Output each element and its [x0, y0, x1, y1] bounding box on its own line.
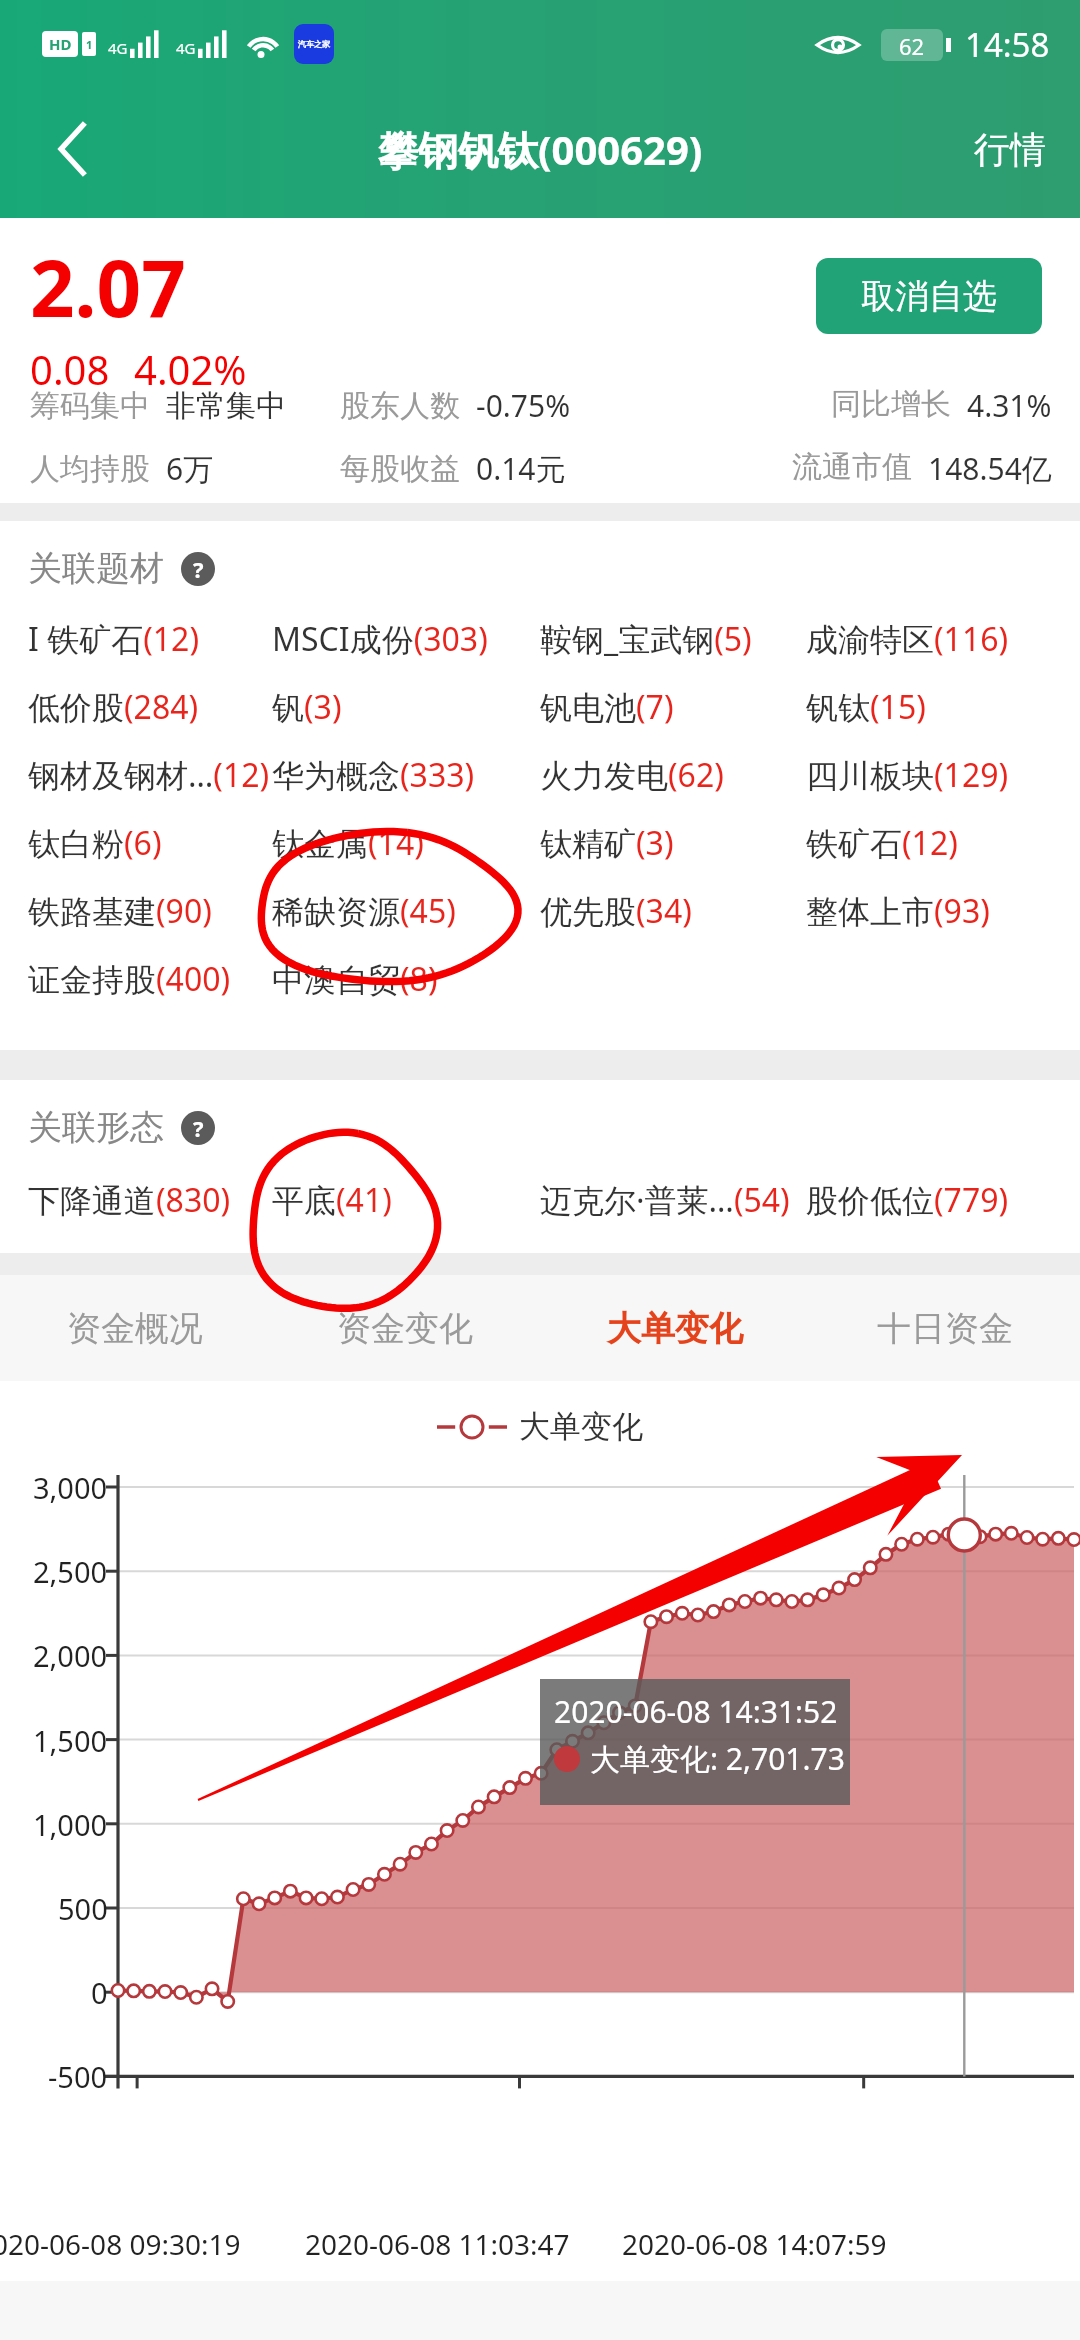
button[interactable]: 下降通道(830) — [28, 1178, 231, 1222]
button[interactable]: Help — [180, 1110, 216, 1146]
button[interactable]: 四川板块(129) — [806, 753, 1009, 797]
button[interactable]: 钒(3) — [272, 685, 342, 729]
button[interactable]: 稀缺资源(45) — [272, 889, 456, 933]
staticText: 股价低位(779) — [806, 1178, 1009, 1222]
staticText: 1,500 — [33, 1721, 108, 1760]
button[interactable]: 华为概念(333) — [272, 753, 475, 797]
button[interactable]: 钒电池(7) — [540, 685, 674, 729]
staticText: 平底(41) — [272, 1178, 392, 1222]
staticText: 大单变化 — [519, 1407, 643, 1446]
button[interactable]: 钛白粉(6) — [28, 821, 162, 865]
staticText: 铁矿石(12) — [806, 821, 958, 865]
staticText: 同比增长 — [831, 385, 951, 423]
staticText: 迈克尔·普莱…(54) — [540, 1178, 790, 1222]
staticText: 1 — [86, 37, 93, 52]
staticText: 0 — [91, 1973, 108, 2012]
staticText: 四川板块(129) — [806, 753, 1009, 797]
staticText: 资金概况 — [67, 1307, 203, 1350]
staticText: 取消自选 — [861, 275, 997, 318]
staticText: 整体上市(93) — [806, 889, 990, 933]
staticText: 14:58 — [965, 22, 1050, 67]
button[interactable]: 大单变化 — [540, 1275, 810, 1381]
staticText: 稀缺资源(45) — [272, 889, 456, 933]
staticText: ? — [193, 554, 204, 584]
staticText: 火力发电(62) — [540, 753, 724, 797]
staticText: MSCI成份(303) — [272, 617, 488, 661]
staticText: 筹码集中 — [30, 387, 150, 425]
staticText: 2020-06-08 11:03:47 — [305, 2225, 570, 2263]
button[interactable]: 铁矿石(12) — [806, 821, 958, 865]
staticText: 148.54亿 — [928, 448, 1052, 489]
button[interactable]: 优先股(34) — [540, 889, 692, 933]
staticText: 2,000 — [33, 1636, 108, 1675]
staticText: 钛金属(14) — [272, 821, 424, 865]
staticText: 下降通道(830) — [28, 1178, 231, 1222]
staticText: 关联形态 — [28, 1106, 164, 1149]
staticText: 人均持股 — [30, 450, 150, 488]
staticText: 1,000 — [33, 1805, 108, 1844]
staticText: 3,000 — [33, 1468, 108, 1507]
staticText: I 铁矿石(12) — [28, 617, 199, 661]
button[interactable]: 成渝特区(116) — [806, 617, 1009, 661]
staticText: 62 — [899, 31, 925, 59]
staticText: 2020-06-08 14:31:52 — [554, 1691, 838, 1732]
button[interactable]: 平底(41) — [272, 1178, 392, 1222]
staticText: 股东人数 — [340, 387, 460, 425]
staticText: 大单变化: 2,701.73 — [590, 1738, 845, 1779]
button[interactable]: Help — [180, 551, 216, 587]
button[interactable]: 十日资金 — [810, 1275, 1080, 1381]
staticText: 钒电池(7) — [540, 685, 674, 729]
button[interactable]: 低价股(284) — [28, 685, 199, 729]
staticText: 关联题材 — [28, 547, 164, 590]
staticText: 大单变化 — [607, 1307, 743, 1350]
staticText: 钢材及钢材…(12) — [28, 753, 270, 797]
staticText: 6万 — [166, 448, 214, 489]
staticText: 2.07 — [30, 234, 186, 340]
button[interactable]: 证金持股(400) — [28, 957, 231, 1001]
staticText: 钛精矿(3) — [540, 821, 674, 865]
staticText: 非常集中 — [166, 387, 286, 425]
staticText: 成渝特区(116) — [806, 617, 1009, 661]
button[interactable]: 取消自选 — [816, 258, 1042, 334]
button[interactable]: 钛精矿(3) — [540, 821, 674, 865]
staticText: 0.14元 — [476, 448, 566, 489]
staticText: 行情 — [974, 127, 1046, 172]
button[interactable]: 资金概况 — [0, 1275, 270, 1381]
staticText: 攀钢钒钛(000629) — [378, 122, 703, 177]
staticText: -0.75% — [476, 385, 571, 426]
button[interactable]: 火力发电(62) — [540, 753, 724, 797]
staticText: 2020-06-08 14:07:59 — [622, 2225, 887, 2263]
button[interactable]: Back — [36, 111, 112, 187]
staticText: 中澳自贸(8) — [272, 957, 438, 1001]
button[interactable]: I 铁矿石(12) — [28, 617, 199, 661]
button[interactable]: 钛金属(14) — [272, 821, 424, 865]
button[interactable]: 行情 — [940, 113, 1080, 186]
button[interactable]: 资金变化 — [270, 1275, 540, 1381]
button[interactable]: 铁路基建(90) — [28, 889, 212, 933]
staticText: 钒钛(15) — [806, 685, 926, 729]
button[interactable]: 钢材及钢材…(12) — [28, 753, 270, 797]
button[interactable]: 鞍钢_宝武钢(5) — [540, 617, 752, 661]
staticText: 铁路基建(90) — [28, 889, 212, 933]
staticText: 2,500 — [33, 1552, 108, 1591]
staticText: 4G — [176, 38, 196, 58]
staticText: 4G — [108, 38, 128, 58]
staticText: 钒(3) — [272, 685, 342, 729]
staticText: 优先股(34) — [540, 889, 692, 933]
staticText: 500 — [58, 1889, 108, 1928]
staticText: 资金变化 — [337, 1307, 473, 1350]
staticText: 十日资金 — [877, 1307, 1013, 1350]
button[interactable]: 股价低位(779) — [806, 1178, 1009, 1222]
staticText: 汽车之家 — [298, 39, 330, 49]
button[interactable]: MSCI成份(303) — [272, 617, 488, 661]
staticText: -500 — [48, 2057, 108, 2096]
staticText: 华为概念(333) — [272, 753, 475, 797]
button[interactable]: 中澳自贸(8) — [272, 957, 438, 1001]
staticText: 鞍钢_宝武钢(5) — [540, 617, 752, 661]
button[interactable]: 钒钛(15) — [806, 685, 926, 729]
staticText: 证金持股(400) — [28, 957, 231, 1001]
staticText: 钛白粉(6) — [28, 821, 162, 865]
button[interactable]: 整体上市(93) — [806, 889, 990, 933]
button[interactable]: 迈克尔·普莱…(54) — [540, 1178, 790, 1222]
staticText: 4.02% — [134, 342, 247, 396]
